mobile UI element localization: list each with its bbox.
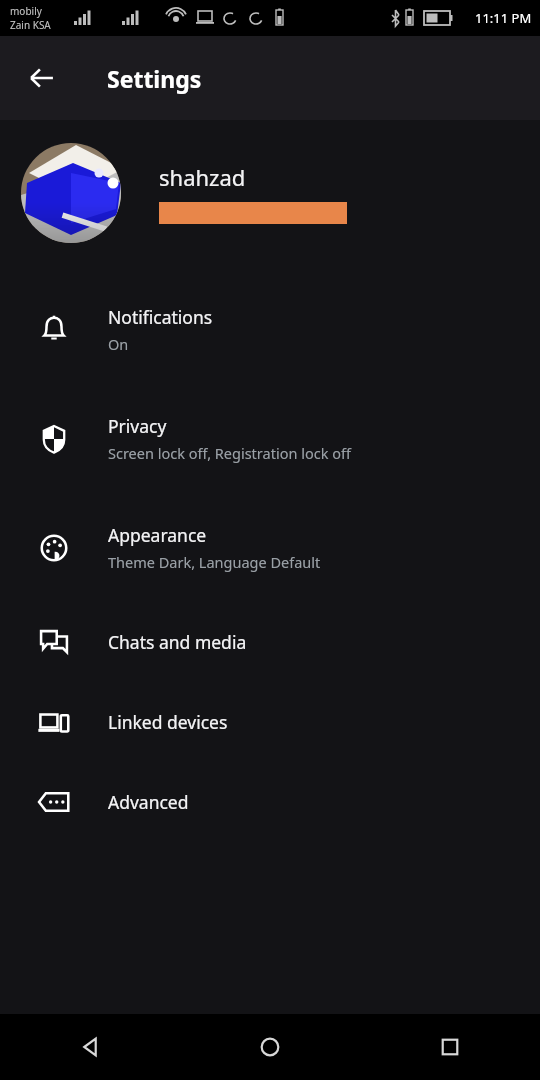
staticText: Linked devices <box>108 710 228 734</box>
staticText: Notifications <box>108 305 213 329</box>
staticText: Zain KSA <box>10 18 51 32</box>
button[interactable]: Chats and media <box>0 602 540 682</box>
button[interactable]: Home <box>180 1014 360 1080</box>
staticText: Theme Dark, Language Default <box>108 552 321 572</box>
button[interactable]: Back <box>0 1014 180 1080</box>
staticText: 11:11 PM <box>475 9 532 27</box>
button[interactable]: Appearance <box>0 493 540 602</box>
staticText: Advanced <box>108 790 189 814</box>
staticText: Privacy <box>108 414 167 438</box>
button[interactable]: Linked devices <box>0 682 540 762</box>
staticText: Settings <box>107 63 202 94</box>
staticText: On <box>108 334 129 354</box>
button[interactable]: Back <box>18 54 66 102</box>
staticText: Appearance <box>108 523 207 547</box>
staticText: Screen lock off, Registration lock off <box>108 443 351 463</box>
staticText: mobily <box>10 4 42 18</box>
button[interactable]: Recent apps <box>360 1014 540 1080</box>
staticText: shahzad <box>159 162 246 192</box>
staticText: Chats and media <box>108 630 247 654</box>
button[interactable]: Privacy <box>0 384 540 493</box>
button[interactable]: shahzad <box>0 143 540 243</box>
button[interactable]: Advanced <box>0 762 540 842</box>
button[interactable]: Notifications <box>0 275 540 384</box>
